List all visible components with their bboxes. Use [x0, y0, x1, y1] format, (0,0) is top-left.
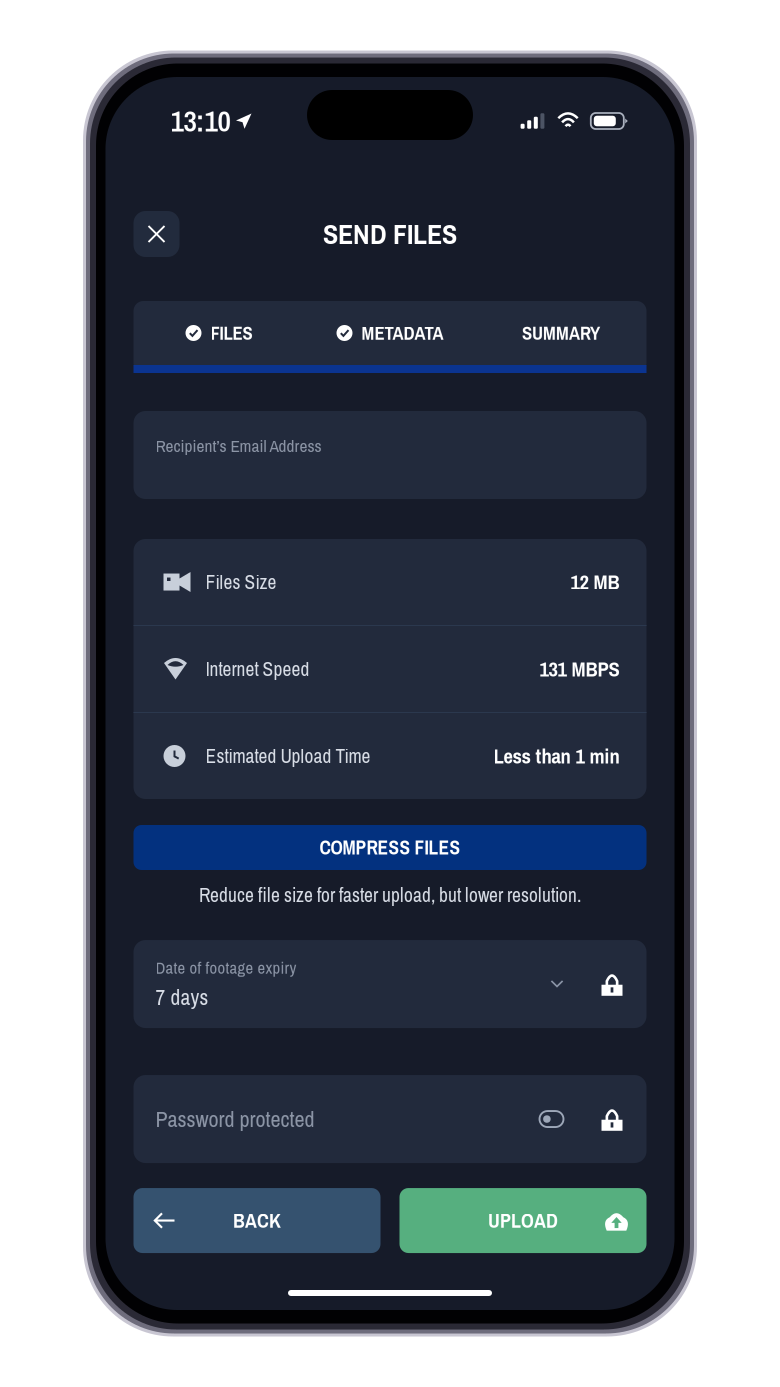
button[interactable]: Close [133, 211, 179, 257]
staticText: Date of footage expiry [155, 956, 296, 979]
button[interactable]: Date of footage expiry [133, 940, 646, 1028]
button[interactable]: METADATA [304, 301, 475, 365]
staticText: SUMMARY [522, 320, 600, 345]
staticText: Estimated Upload Time [205, 743, 370, 769]
button[interactable]: SUMMARY [475, 301, 646, 365]
staticText: Reduce file size for faster upload, but … [199, 882, 581, 908]
staticText: SEND FILES [323, 215, 457, 253]
staticText: 12 MB [570, 568, 619, 596]
button[interactable]: UPLOAD [399, 1188, 646, 1253]
staticText: COMPRESS FILES [319, 834, 460, 860]
staticText: 7 days [155, 983, 208, 1012]
staticText: FILES [210, 320, 252, 345]
button[interactable]: Password protected [539, 1111, 563, 1127]
staticText: UPLOAD [488, 1207, 558, 1234]
staticText: Internet Speed [205, 656, 309, 682]
staticText: 131 MBPS [539, 655, 619, 683]
button[interactable]: FILES [133, 301, 304, 365]
staticText: Recipient’s Email Address [155, 434, 321, 457]
staticText: Files Size [205, 569, 276, 595]
staticText: BACK [233, 1207, 281, 1234]
staticText: 13:10 [170, 101, 230, 141]
button[interactable]: BACK [133, 1188, 380, 1253]
button[interactable]: COMPRESS FILES [133, 825, 646, 870]
staticText: METADATA [361, 320, 443, 345]
staticText: Password protected [155, 1104, 314, 1134]
staticText: Less than 1 min [493, 742, 619, 770]
